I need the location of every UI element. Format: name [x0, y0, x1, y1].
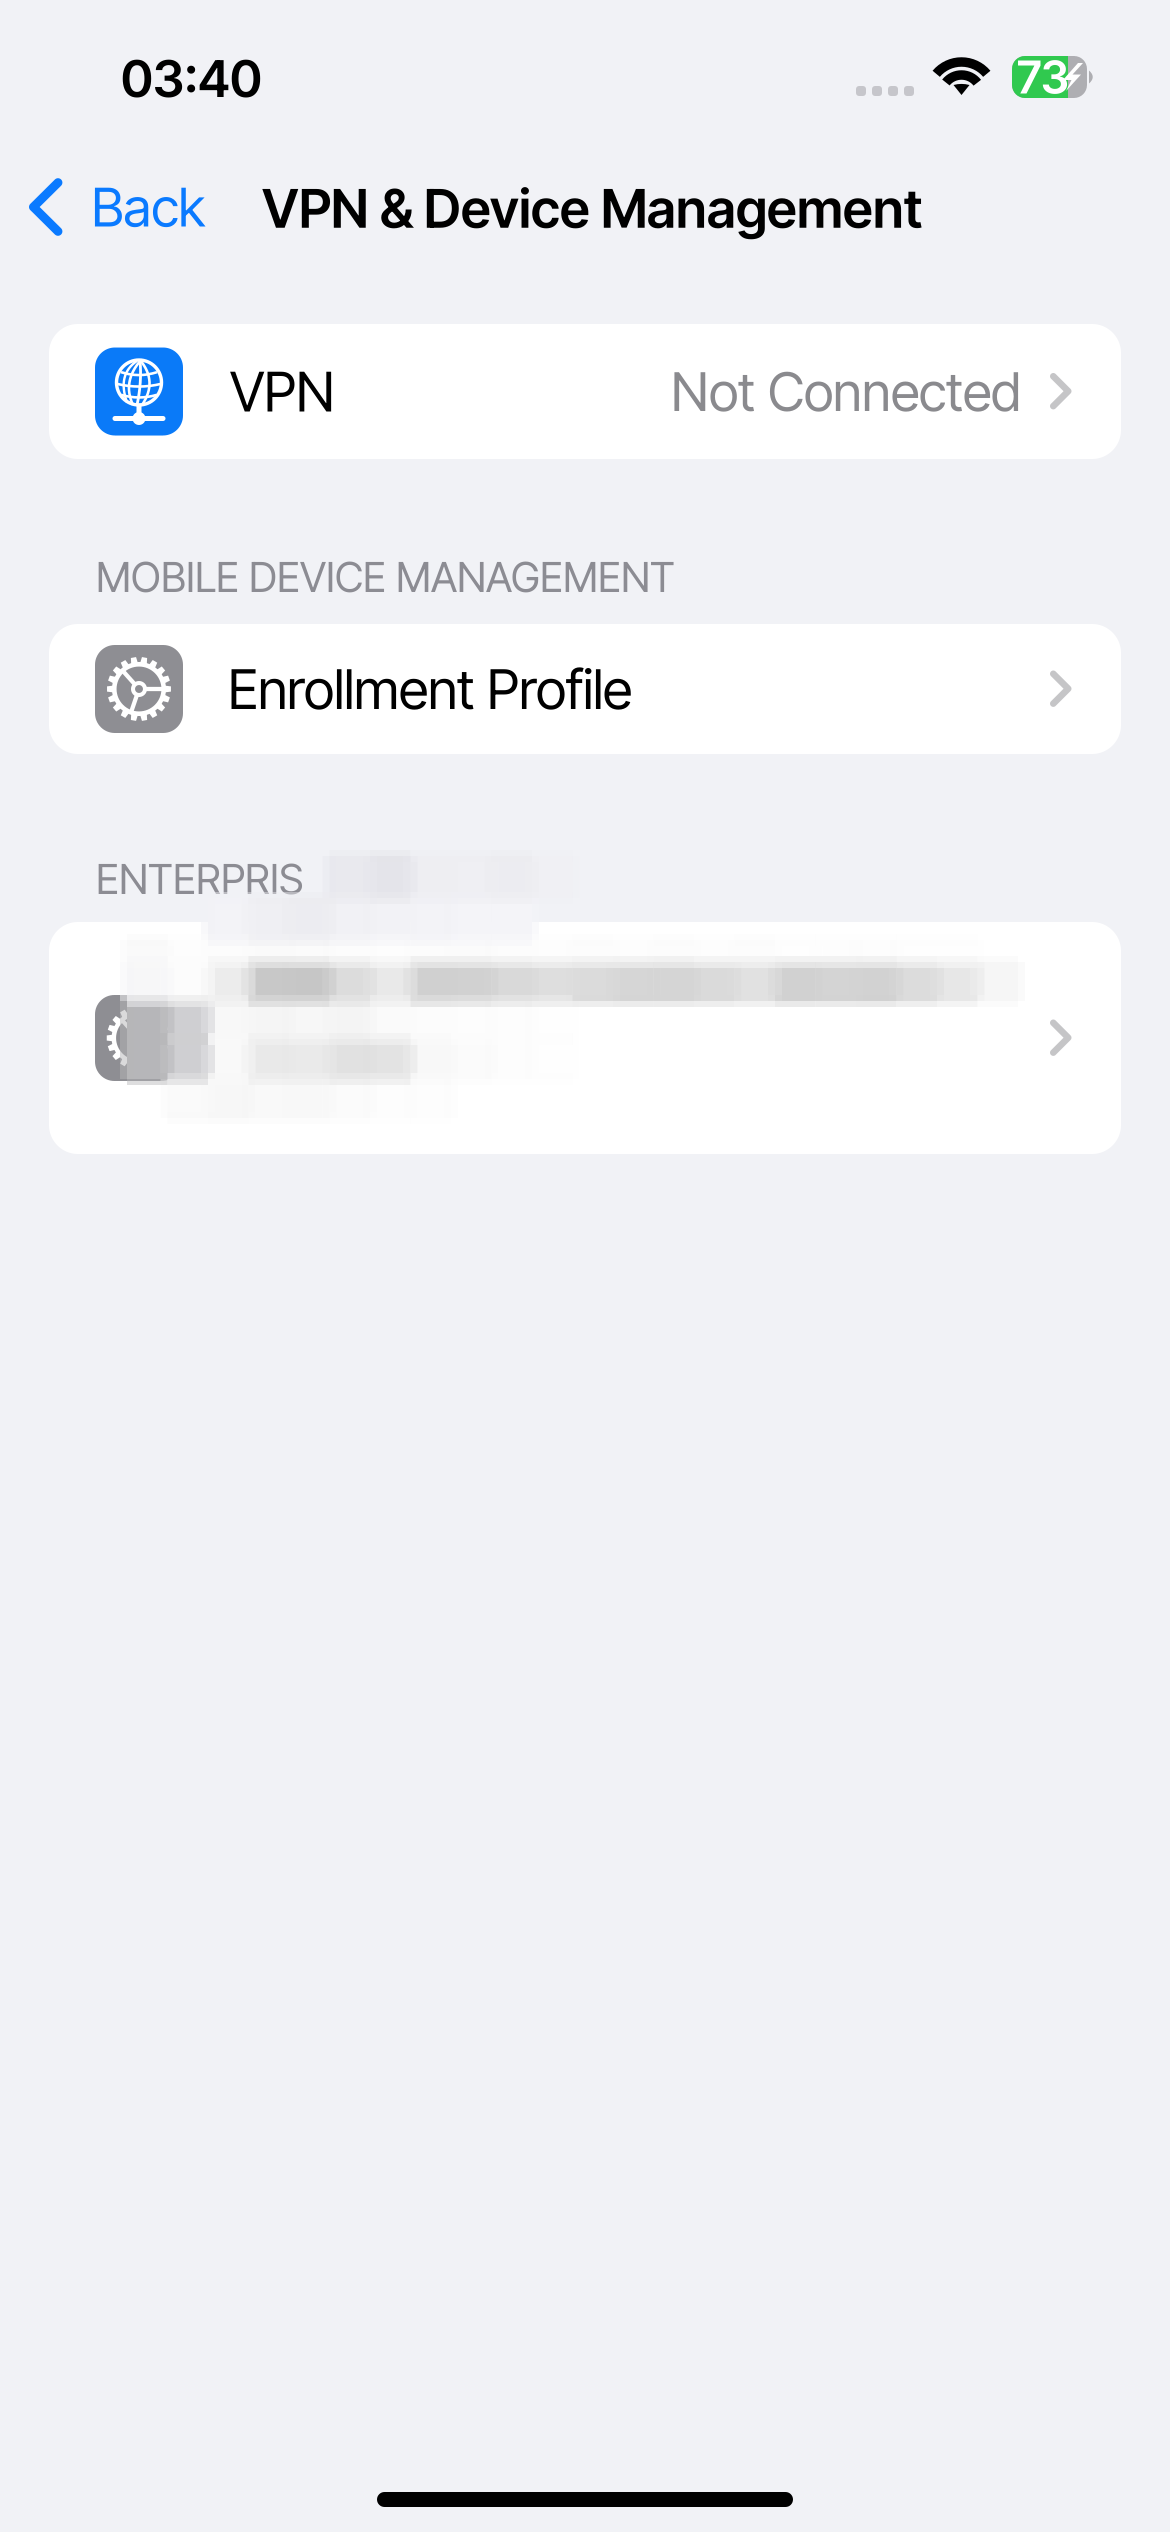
button[interactable]	[49, 922, 1121, 1154]
staticText: VPN	[230, 358, 335, 424]
staticText: Not Connected	[671, 359, 1021, 424]
button[interactable]: Back	[0, 157, 224, 257]
staticText: MOBILE DEVICE MANAGEMENT	[96, 552, 675, 602]
staticText: 73	[1017, 50, 1069, 104]
button[interactable]: Enrollment Profile	[49, 624, 1121, 754]
staticText: 03:40	[121, 48, 262, 109]
staticText: Back	[91, 175, 205, 239]
staticText: ENTERPRIS	[96, 854, 303, 904]
button[interactable]: VPN	[49, 324, 1121, 459]
staticText: VPN & Device Management	[262, 176, 922, 240]
staticText: Enrollment Profile	[228, 656, 632, 722]
